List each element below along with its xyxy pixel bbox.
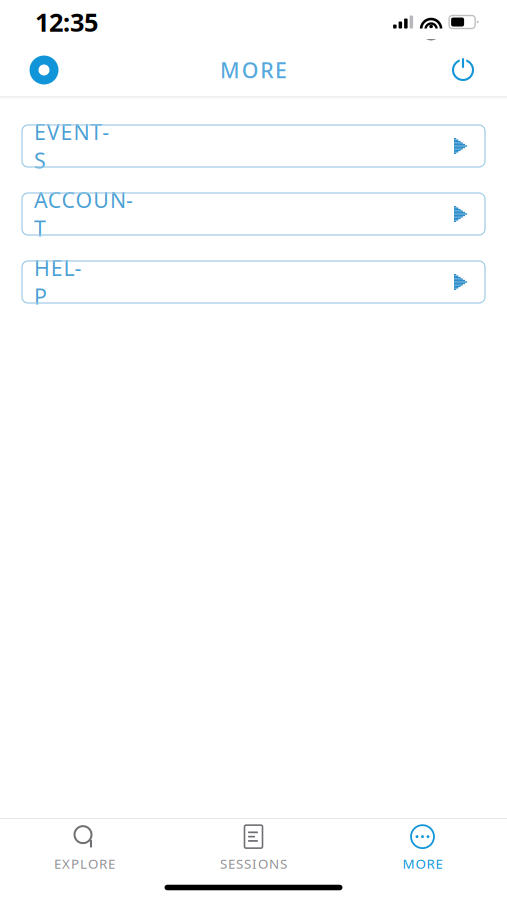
button[interactable]: EVENTS: [22, 125, 485, 167]
staticText: SESSIONS: [220, 855, 287, 872]
button[interactable]: SESSIONS: [169, 818, 338, 876]
staticText: MORE: [220, 56, 287, 84]
button[interactable]: ACCOUNT: [22, 193, 485, 235]
staticText: EVENTS: [34, 118, 109, 174]
button[interactable]: Home: [20, 46, 68, 94]
button[interactable]: EXPLORE: [0, 818, 169, 876]
staticText: MORE: [402, 855, 442, 872]
button[interactable]: HELP: [22, 261, 485, 303]
staticText: HELP: [34, 254, 82, 310]
button[interactable]: Sign out: [439, 46, 487, 94]
button[interactable]: MORE: [338, 818, 507, 876]
staticText: ACCOUNT: [34, 186, 133, 242]
staticText: EXPLORE: [54, 855, 115, 872]
staticText: 12:35: [35, 5, 98, 39]
